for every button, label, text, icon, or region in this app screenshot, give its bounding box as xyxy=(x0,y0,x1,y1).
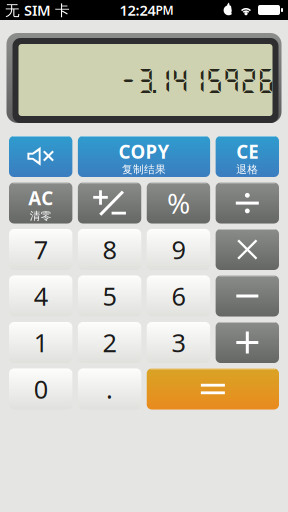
staticText: 12:24 xyxy=(119,0,155,20)
staticText: PM xyxy=(155,2,173,18)
button[interactable]: 6 xyxy=(147,275,210,316)
button[interactable]: Percent xyxy=(147,182,210,223)
button[interactable]: . xyxy=(78,368,141,409)
staticText: 无 SIM 卡 xyxy=(5,0,70,20)
button[interactable]: 2 xyxy=(78,322,141,363)
button[interactable]: Minus xyxy=(216,275,279,316)
staticText: 清零 xyxy=(30,209,52,222)
button[interactable]: COPY xyxy=(78,136,210,177)
button[interactable]: 1 xyxy=(9,322,72,363)
button[interactable]: 5 xyxy=(78,275,141,316)
staticText: 复制结果 xyxy=(122,163,166,176)
button[interactable]: 4 xyxy=(9,275,72,316)
staticText: 6 xyxy=(171,279,185,313)
staticText: -3.1415926 xyxy=(119,64,275,95)
button[interactable]: 9 xyxy=(147,229,210,270)
button[interactable]: 3 xyxy=(147,322,210,363)
button[interactable]: Multiply xyxy=(216,229,279,270)
staticText: 8 xyxy=(103,233,117,266)
staticText: 4 xyxy=(34,279,48,313)
staticText: COPY xyxy=(118,139,169,164)
staticText: 7 xyxy=(34,233,48,266)
button[interactable]: Divide xyxy=(216,182,279,223)
staticText: AC xyxy=(28,186,53,210)
button[interactable]: Mute xyxy=(9,136,72,177)
staticText: 退格 xyxy=(236,163,258,176)
button[interactable]: Plus minus xyxy=(78,182,141,223)
staticText: 5 xyxy=(103,279,117,313)
staticText: 1 xyxy=(34,326,48,359)
button[interactable]: Equals xyxy=(147,368,279,409)
button[interactable]: CE xyxy=(216,136,279,177)
staticText: 2 xyxy=(103,326,117,359)
staticText: CE xyxy=(236,139,258,164)
button[interactable]: Plus xyxy=(216,322,279,363)
staticText: 0 xyxy=(34,372,48,406)
button[interactable]: 7 xyxy=(9,229,72,270)
button[interactable]: 0 xyxy=(9,368,72,409)
button[interactable]: 8 xyxy=(78,229,141,270)
staticText: % xyxy=(167,184,190,222)
staticText: . xyxy=(106,372,113,406)
button[interactable]: AC xyxy=(9,182,72,223)
staticText: 9 xyxy=(171,233,185,266)
staticText: 3 xyxy=(171,326,185,359)
